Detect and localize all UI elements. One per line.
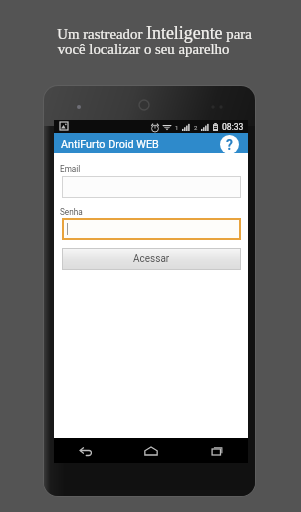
- staticText: Um rastreador Inteligente para: [4, 23, 301, 43]
- button[interactable]: Ajuda: [220, 135, 239, 154]
- staticText: 08:33: [222, 122, 244, 132]
- button[interactable]: Voltar: [54, 438, 118, 463]
- button[interactable]: Campo de senha: [62, 218, 241, 240]
- staticText: Senha: [60, 207, 83, 217]
- staticText: 2: [194, 124, 198, 131]
- staticText: Acessar: [133, 253, 170, 265]
- staticText: ?: [226, 137, 233, 153]
- button[interactable]: Início: [118, 438, 183, 463]
- button[interactable]: Recentes: [183, 438, 248, 463]
- button[interactable]: Campo de email: [62, 176, 241, 198]
- staticText: AntiFurto Droid WEB: [61, 138, 159, 151]
- staticText: 1: [175, 124, 179, 131]
- staticText: você localizar o seu aparelho: [0, 41, 294, 57]
- staticText: Email: [60, 164, 81, 174]
- button[interactable]: Acessar: [62, 248, 241, 270]
